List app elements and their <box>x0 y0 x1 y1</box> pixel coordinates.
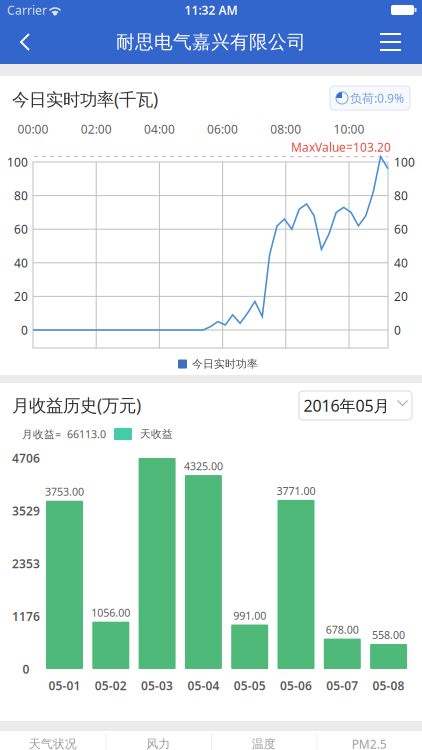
staticText: 80 <box>14 188 28 203</box>
staticText: 100 <box>394 154 415 170</box>
staticText: 0 <box>21 322 28 338</box>
staticText: 0 <box>22 661 29 677</box>
staticText: 10:00 <box>333 121 364 137</box>
staticText: 月收益历史(万元) <box>12 393 141 416</box>
staticText: 天气状况 <box>29 737 77 750</box>
staticText: Carrier <box>7 2 47 18</box>
staticText: 耐思电气嘉兴有限公司 <box>116 30 306 53</box>
staticText: 1176 <box>12 608 40 624</box>
button[interactable]: 温度 <box>0 0 105 12</box>
staticText: 05-08 <box>373 677 405 693</box>
staticText: 05-03 <box>141 677 173 693</box>
staticText: 3529 <box>12 503 40 519</box>
staticText: 今日实时功率 <box>192 357 258 370</box>
staticText: 05-01 <box>48 677 80 693</box>
staticText: 负荷:0.9% <box>350 90 404 106</box>
staticText: 05-02 <box>95 677 127 693</box>
staticText: 05-05 <box>234 677 266 693</box>
staticText: 2353 <box>12 555 40 571</box>
staticText: 11:32 AM <box>184 2 237 18</box>
staticText: 20 <box>14 288 28 304</box>
staticText: 00:00 <box>17 121 48 137</box>
button[interactable]: 风力 <box>0 0 105 12</box>
staticText: 天收益 <box>140 427 173 440</box>
staticText: 06:00 <box>207 121 238 137</box>
staticText: 991.00 <box>233 608 266 623</box>
staticText: 04:00 <box>144 121 175 137</box>
staticText: 20 <box>394 288 408 304</box>
staticText: 02:00 <box>81 121 112 137</box>
staticText: 60 <box>394 221 408 237</box>
staticText: 60 <box>14 221 28 237</box>
staticText: 0 <box>394 322 401 338</box>
staticText: 今日实时功率(千瓦) <box>12 87 158 110</box>
button[interactable]: Back <box>0 0 40 40</box>
staticText: 3771.00 <box>276 484 315 498</box>
button[interactable]: 2016年05月 <box>0 0 113 29</box>
button[interactable]: 天气状况 <box>0 0 105 12</box>
staticText: 3753.00 <box>45 485 84 499</box>
staticText: 558.00 <box>372 628 405 642</box>
staticText: 100 <box>7 154 28 170</box>
button[interactable]: 负荷:0.9% <box>0 0 80 24</box>
staticText: MaxValue=103.20 <box>291 139 391 155</box>
staticText: PM2.5 <box>352 736 387 750</box>
button[interactable]: Menu <box>0 0 42 40</box>
staticText: 1056.00 <box>91 606 130 620</box>
staticText: 40 <box>394 255 408 271</box>
staticText: 2016年05月 <box>303 395 389 416</box>
staticText: 4706 <box>12 450 40 466</box>
staticText: 678.00 <box>326 622 359 637</box>
staticText: 4325.00 <box>184 459 223 473</box>
staticText: 风力 <box>146 737 170 750</box>
staticText: 温度 <box>252 737 276 750</box>
staticText: 05-07 <box>326 677 358 693</box>
staticText: 08:00 <box>270 121 301 137</box>
staticText: 40 <box>14 255 28 271</box>
staticText: 月收益= 66113.0 <box>22 427 106 441</box>
staticText: 05-04 <box>187 677 219 693</box>
staticText: 05-06 <box>280 677 312 693</box>
staticText: 80 <box>394 188 408 203</box>
button[interactable]: PM2.5 <box>0 0 105 12</box>
